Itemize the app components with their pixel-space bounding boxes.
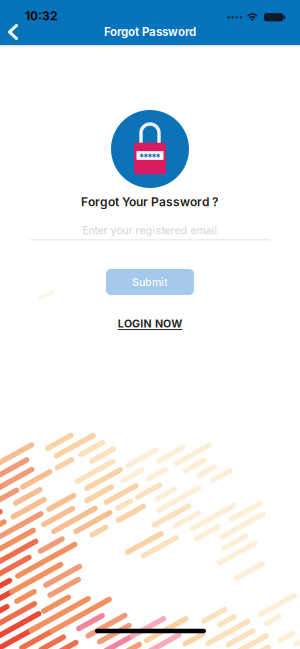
staticText: Enter your registered email <box>82 224 217 237</box>
button[interactable]: LOGIN NOW <box>118 317 182 330</box>
button[interactable]: Back <box>2 21 26 43</box>
staticText: Forgot Your Password ? <box>81 195 219 209</box>
staticText: Forgot Password <box>104 25 196 39</box>
button[interactable]: Submit <box>106 269 194 295</box>
staticText: LOGIN NOW <box>118 317 182 330</box>
button[interactable]: Enter your registered email <box>30 218 270 246</box>
staticText: Submit <box>132 276 168 288</box>
staticText: 10:32 <box>25 9 58 23</box>
